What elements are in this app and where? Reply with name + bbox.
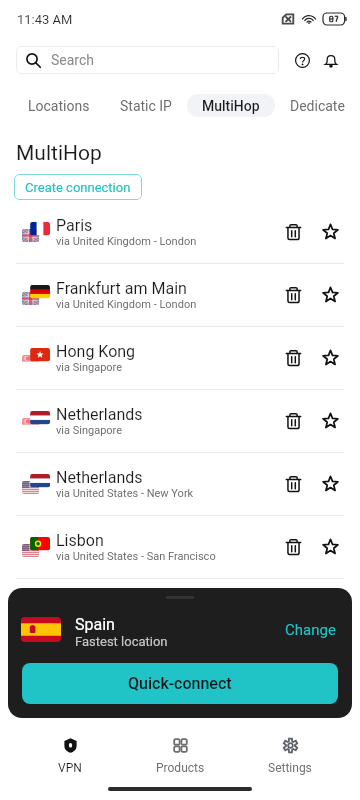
button[interactable]: MultiHop (187, 94, 275, 117)
staticText: Static IP (120, 98, 172, 114)
button[interactable]: Dedicated IP (275, 94, 360, 117)
staticText: Locations (28, 98, 90, 114)
staticText: via United States - New York (56, 487, 194, 500)
button[interactable]: VPN (30, 738, 110, 775)
button[interactable]: Delete (278, 280, 308, 310)
button[interactable]: Quick-connect (22, 663, 338, 704)
staticText: Spain (75, 615, 115, 634)
button[interactable]: Favorite (315, 532, 345, 562)
staticText: Change (285, 621, 336, 639)
button[interactable]: Delete (278, 406, 308, 436)
button[interactable]: Favorite (315, 469, 345, 499)
staticText: Frankfurt am Main (56, 279, 187, 298)
button[interactable]: Search (16, 46, 279, 74)
staticText: Netherlands (56, 468, 143, 487)
button[interactable]: Frankfurt am Main (0, 264, 360, 326)
button[interactable]: Delete (278, 343, 308, 373)
button[interactable]: Delete (278, 469, 308, 499)
staticText: Fastest location (75, 634, 168, 648)
button[interactable]: Favorite (315, 343, 345, 373)
button[interactable]: Lisbon (0, 516, 360, 578)
staticText: via United States - San Francisco (56, 550, 216, 563)
staticText: Create connection (25, 180, 131, 195)
staticText: Paris (56, 216, 93, 235)
staticText: via Singapore (56, 424, 123, 437)
button[interactable]: Delete (278, 217, 308, 247)
button[interactable]: Favorite (315, 217, 345, 247)
button[interactable]: Change (281, 617, 340, 643)
button[interactable]: Favorite (315, 280, 345, 310)
button[interactable]: Notifications (317, 46, 345, 74)
staticText: Products (156, 761, 205, 775)
button[interactable]: Delete (278, 532, 308, 562)
staticText: Netherlands (56, 405, 143, 424)
button[interactable]: Create connection (14, 174, 142, 200)
button[interactable]: Paris (0, 201, 360, 263)
button[interactable]: Static IP (105, 94, 187, 117)
button[interactable]: Favorite (315, 406, 345, 436)
staticText: VPN (58, 761, 82, 775)
staticText: Hong Kong (56, 342, 136, 361)
staticText: 11:43 AM (17, 12, 73, 27)
staticText: Dedicated IP (290, 98, 345, 114)
staticText: via United Kingdom - London (56, 235, 197, 248)
staticText: via United Kingdom - London (56, 298, 197, 311)
staticText: Search (51, 52, 95, 68)
staticText: Quick-connect (128, 674, 232, 693)
staticText: MultiHop (202, 98, 260, 114)
button[interactable]: Settings (250, 738, 330, 775)
button[interactable]: Hong Kong (0, 327, 360, 389)
button[interactable]: Netherlands (0, 390, 360, 452)
staticText: MultiHop (16, 141, 102, 166)
staticText: via Singapore (56, 361, 123, 374)
button[interactable]: Netherlands (0, 453, 360, 515)
button[interactable]: Help (288, 46, 316, 74)
button[interactable]: Locations (13, 94, 105, 117)
staticText: Lisbon (56, 531, 104, 550)
button[interactable]: Products (140, 738, 220, 775)
staticText: Settings (268, 761, 312, 775)
